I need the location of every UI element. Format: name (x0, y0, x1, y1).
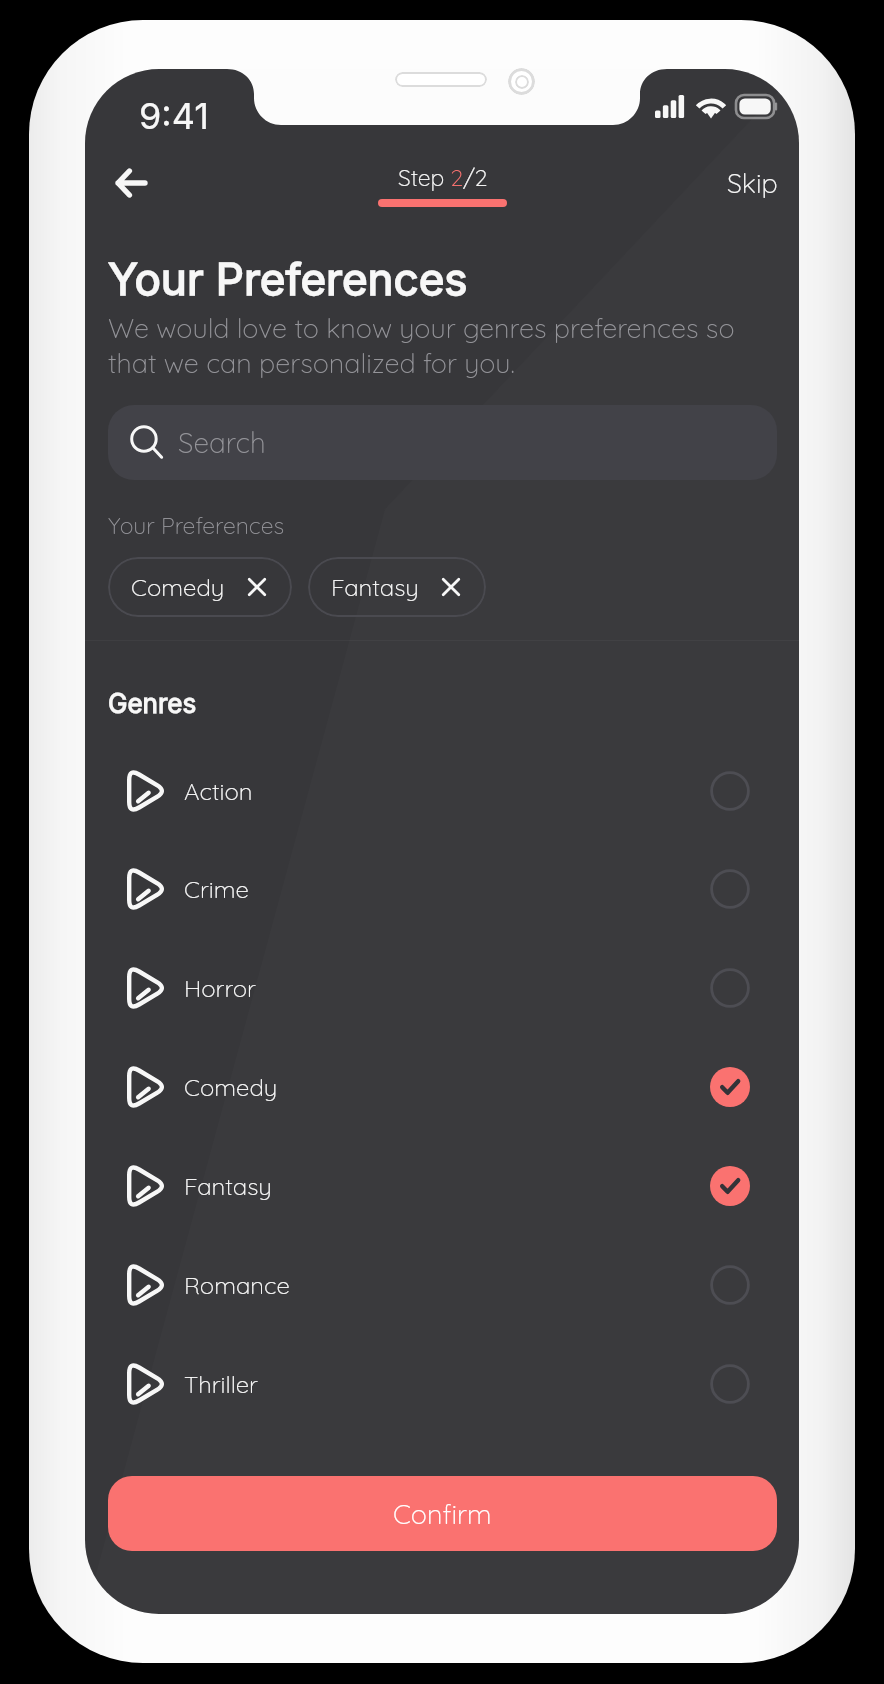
staticText: Fantasy (331, 572, 419, 602)
button[interactable]: Crime (108, 839, 777, 938)
staticText: Horror (184, 973, 256, 1003)
button[interactable]: Confirm (108, 1476, 777, 1551)
button[interactable]: Romance (108, 1235, 777, 1334)
staticText: Romance (184, 1270, 290, 1300)
staticText: Your Preferences (108, 252, 468, 305)
staticText: We would love to know your genres prefer… (108, 311, 735, 380)
button[interactable]: Fantasy (108, 1136, 777, 1235)
staticText: Comedy (131, 572, 225, 602)
staticText: Thriller (184, 1369, 258, 1399)
staticText: Genres (108, 688, 197, 719)
staticText: Fantasy (184, 1171, 272, 1201)
staticText: 9:41 (139, 94, 209, 138)
button[interactable]: Search (108, 405, 777, 480)
button[interactable]: Comedy (108, 557, 292, 617)
button[interactable]: Skip (713, 156, 792, 210)
staticText: Your Preferences (108, 511, 285, 540)
staticText: Search (178, 425, 266, 460)
button[interactable]: Back (100, 152, 162, 214)
staticText: Crime (184, 874, 249, 904)
staticText: Comedy (184, 1072, 278, 1102)
button[interactable]: Action (108, 741, 777, 840)
button[interactable]: Fantasy (308, 557, 486, 617)
staticText: Step 2/2 (398, 163, 488, 192)
staticText: Skip (727, 166, 778, 200)
button[interactable]: Thriller (108, 1334, 777, 1433)
staticText: Action (184, 776, 253, 806)
button[interactable]: Comedy (108, 1037, 777, 1136)
button[interactable]: Horror (108, 938, 777, 1037)
staticText: Confirm (393, 1497, 492, 1531)
